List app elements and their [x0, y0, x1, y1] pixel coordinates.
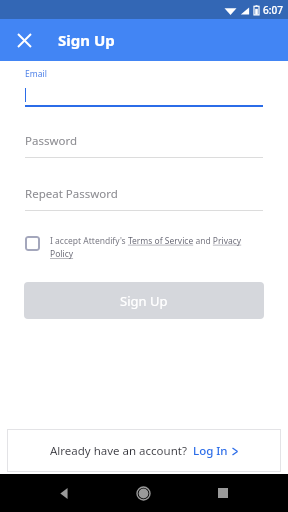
button[interactable]: Repeat Password: [25, 186, 263, 211]
button[interactable]: Home: [128, 478, 158, 508]
staticText: Log In: [193, 443, 228, 459]
button[interactable]: Email: [25, 68, 263, 107]
button[interactable]: Already have an account?: [7, 429, 281, 472]
staticText: Already have an account?: [50, 443, 187, 459]
staticText: Repeat Password: [25, 186, 118, 202]
button[interactable]: Password: [25, 133, 263, 158]
staticText: 6:07: [263, 3, 283, 17]
staticText: Sign Up: [58, 30, 115, 50]
staticText: Sign Up: [120, 292, 168, 310]
staticText: Password: [25, 133, 78, 149]
button[interactable]: Back: [49, 478, 79, 508]
button[interactable]: Sign Up: [24, 282, 264, 319]
button[interactable]: I accept Attendify's Terms of Service an…: [25, 235, 263, 260]
button[interactable]: Close: [12, 28, 36, 52]
button[interactable]: Recent apps: [208, 478, 238, 508]
staticText: I accept Attendify's Terms of Service an…: [50, 235, 263, 260]
staticText: Email: [25, 68, 47, 80]
